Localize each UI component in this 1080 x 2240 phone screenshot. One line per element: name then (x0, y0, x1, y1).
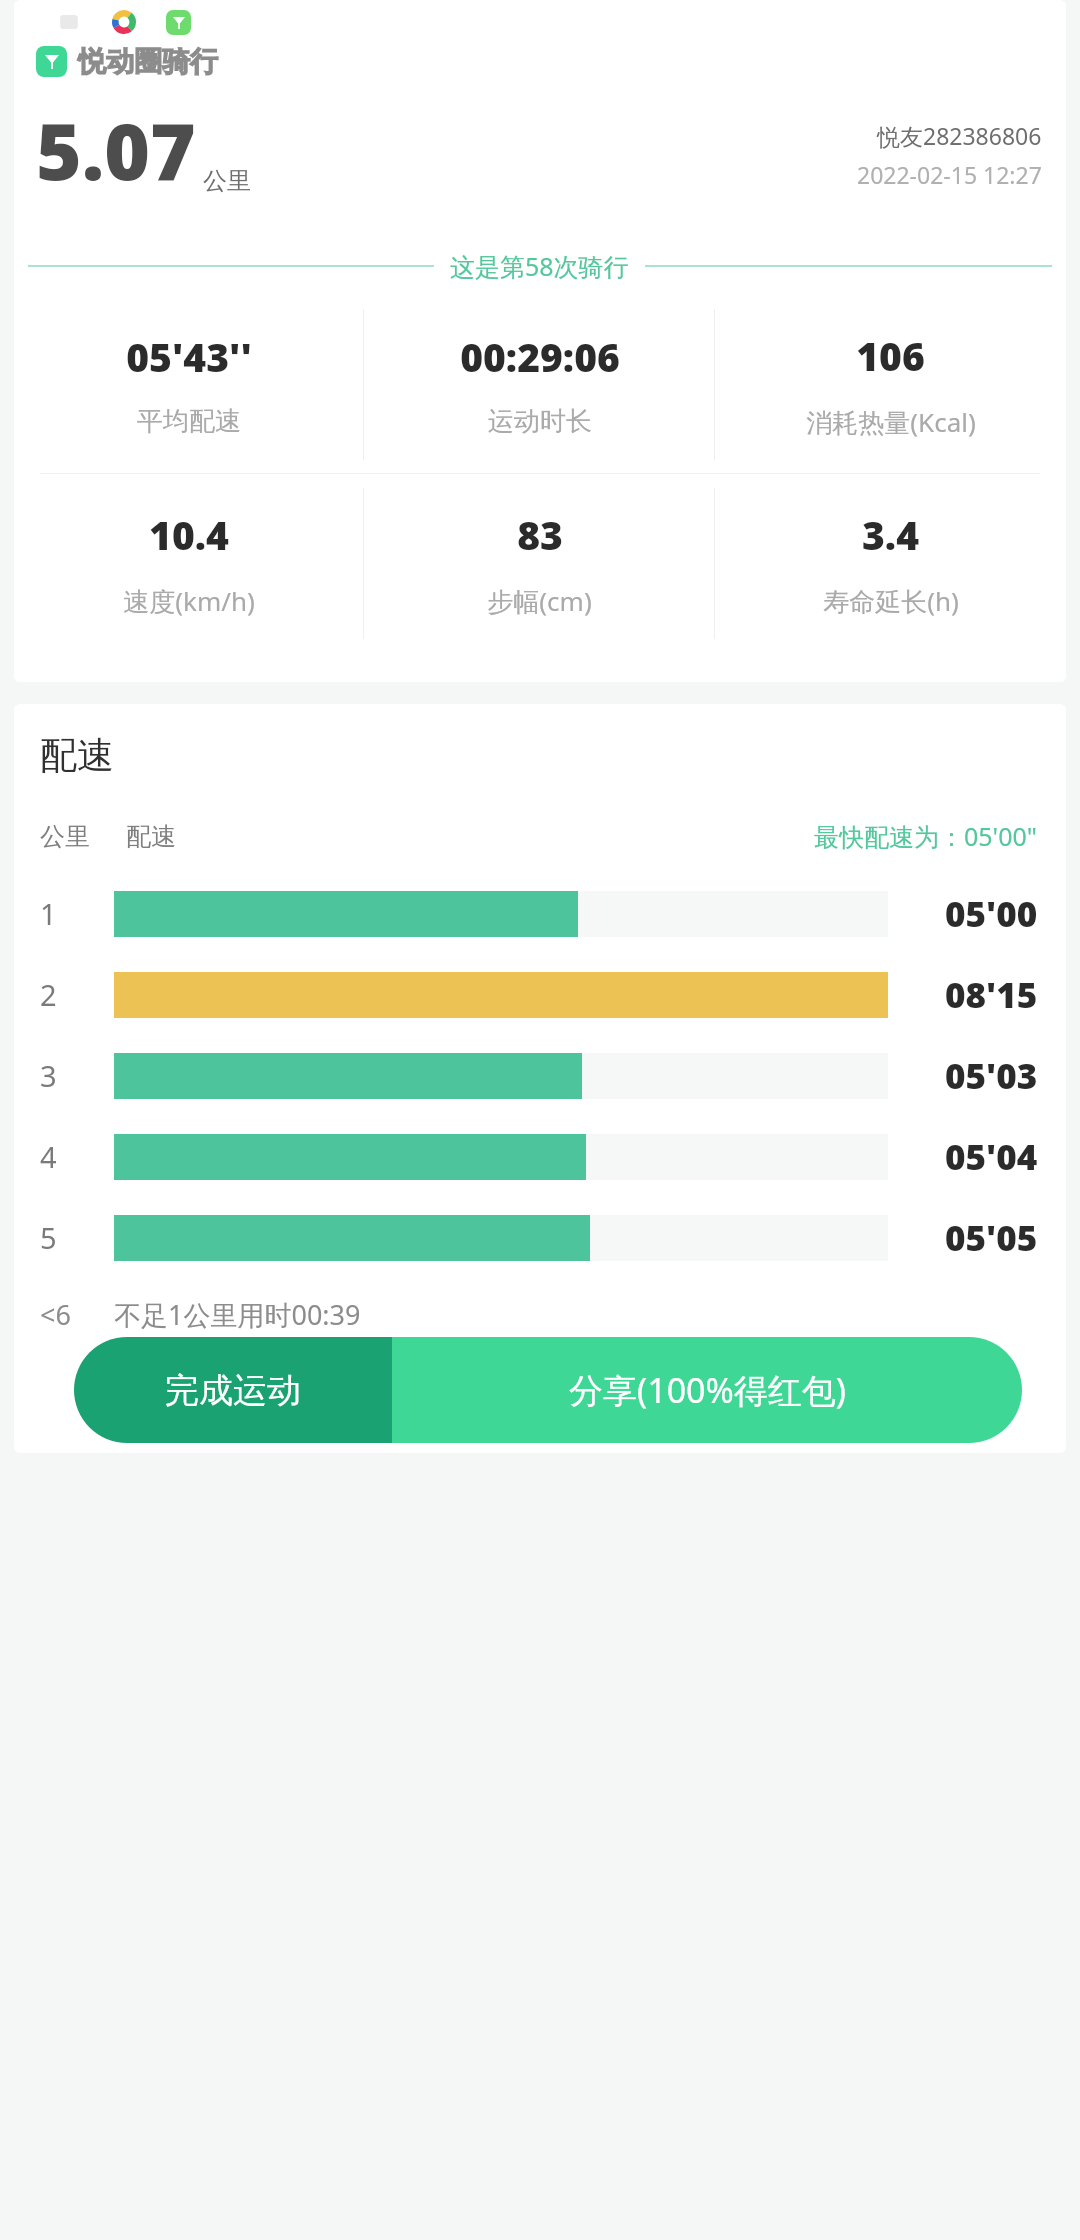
staticText: 公里 (40, 821, 90, 852)
staticText: 83 (517, 508, 563, 561)
staticText: 步幅(cm) (487, 583, 592, 619)
staticText: 这是第58次骑行 (450, 249, 629, 283)
staticText: 公里 (203, 166, 251, 196)
staticText: 平均配速 (137, 405, 241, 438)
staticText: 完成运动 (165, 1369, 301, 1412)
staticText: 2 (40, 975, 57, 1014)
staticText: 分享(100%得红包) (569, 1367, 846, 1413)
staticText: 1 (40, 894, 57, 933)
staticText: 2022-02-15 12:27 (857, 159, 1042, 190)
staticText: 5.07 (36, 97, 196, 203)
staticText: 5 (40, 1218, 57, 1257)
staticText: 配速 (126, 821, 176, 852)
staticText: 05'05 (945, 1214, 1038, 1262)
staticText: 寿命延长(h) (823, 583, 959, 619)
staticText: 消耗热量(Kcal) (806, 404, 976, 440)
staticText: 08'15 (945, 971, 1038, 1019)
staticText: 运动时长 (488, 405, 592, 438)
staticText: 05'43'' (126, 330, 252, 383)
staticText: 悦动圈骑行 (78, 44, 218, 79)
staticText: 配速 (40, 732, 114, 779)
staticText: 05'04 (945, 1133, 1038, 1181)
button[interactable]: 完成运动 (74, 1337, 392, 1443)
staticText: 悦友282386806 (877, 120, 1042, 151)
staticText: 4 (40, 1137, 57, 1176)
staticText: 3 (40, 1056, 57, 1095)
staticText: 不足1公里用时00:39 (114, 1296, 361, 1333)
staticText: 3.4 (862, 508, 919, 561)
staticText: 05'00 (945, 890, 1038, 938)
staticText: 106 (856, 329, 925, 382)
staticText: 00:29:06 (460, 330, 620, 383)
staticText: 10.4 (149, 508, 229, 561)
staticText: 速度(km/h) (123, 583, 255, 619)
staticText: 05'03 (945, 1052, 1038, 1100)
staticText: 最快配速为：05'00" (814, 819, 1038, 853)
button[interactable]: 分享(100%得红包) (392, 1337, 1022, 1443)
staticText: <6 (40, 1296, 71, 1333)
